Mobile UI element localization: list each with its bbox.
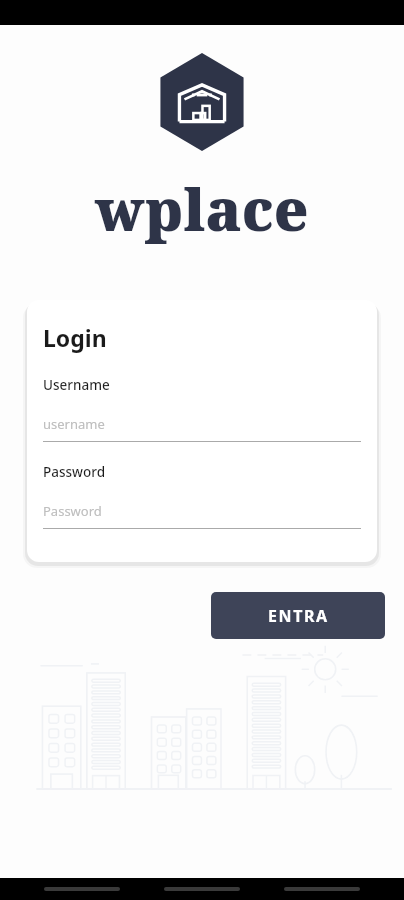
button[interactable]: Username [43,376,361,442]
staticText: Password [43,463,106,481]
button[interactable]: Navigation [284,887,360,891]
staticText: wplace [95,169,309,248]
staticText: Login [43,322,107,353]
button[interactable]: Navigation [44,887,120,891]
button[interactable]: ENTRA [211,592,385,639]
button[interactable]: Navigation [164,887,240,891]
staticText: Username [43,376,110,394]
staticText: Password [43,502,102,520]
staticText: ENTRA [268,605,329,627]
staticText: username [43,415,105,433]
button[interactable]: Password [43,463,361,529]
